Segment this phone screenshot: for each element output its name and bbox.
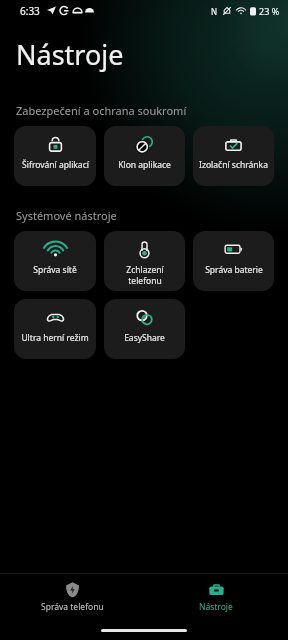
staticText: Správa baterie	[205, 264, 263, 276]
button[interactable]: Šifrování aplikací	[14, 126, 96, 186]
staticText: Nástroje	[16, 36, 124, 73]
button[interactable]: EasyShare	[104, 299, 185, 359]
staticText: Ultra herní režim	[21, 332, 89, 344]
button[interactable]: Správa baterie	[193, 231, 274, 291]
button[interactable]: Správa telefonu	[0, 574, 144, 620]
button[interactable]: Izolační schránka	[193, 126, 274, 186]
button[interactable]: Správa sítě	[14, 231, 96, 291]
staticText: Nástroje	[199, 601, 233, 613]
button[interactable]: Nástroje	[144, 574, 288, 620]
staticText: Šifrování aplikací	[22, 159, 89, 171]
staticText: 6:33	[20, 4, 40, 18]
button[interactable]: Klon aplikace	[104, 126, 185, 186]
staticText: 23 %	[259, 5, 280, 17]
button[interactable]: Zchlazení telefonu	[104, 231, 185, 291]
staticText: Zchlazení telefonu	[126, 264, 164, 286]
staticText: EasyShare	[124, 332, 165, 344]
staticText: Klon aplikace	[118, 159, 171, 171]
button[interactable]: Ultra herní režim	[14, 299, 96, 359]
staticText: Izolační schránka	[199, 159, 268, 171]
staticText: Správa telefonu	[41, 601, 104, 613]
staticText: N	[211, 6, 218, 17]
staticText: Zabezpečení a ochrana soukromí	[16, 103, 187, 118]
staticText: Správa sítě	[33, 264, 77, 276]
staticText: Systémové nástroje	[16, 208, 117, 223]
